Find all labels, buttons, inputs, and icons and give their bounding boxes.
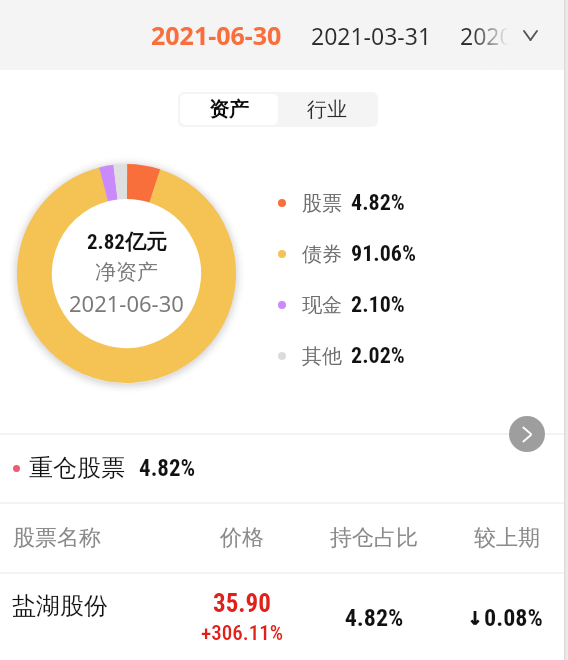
button[interactable]: 资产 [180, 94, 278, 125]
button[interactable]: 其他 [278, 339, 405, 373]
staticText: 资产 [209, 97, 249, 122]
staticText: +306.11% [201, 621, 284, 646]
button[interactable]: 现金 [278, 288, 405, 322]
staticText: 2021-06-30 [151, 18, 282, 52]
staticText: 持仓占比 [330, 524, 418, 552]
staticText: 2021-03-31 [311, 20, 432, 51]
staticText: 债券 [302, 242, 342, 267]
staticText: 2021-06-30 [69, 288, 184, 318]
staticText: 2.10% [351, 292, 405, 318]
staticText: 净资产 [95, 259, 158, 285]
staticText: 较上期 [474, 524, 540, 552]
staticText: 行业 [307, 97, 347, 122]
button[interactable]: 盐湖股份 [0, 573, 568, 660]
button[interactable]: 行业 [278, 94, 376, 125]
staticText: 4.82% [314, 604, 434, 632]
staticText: 其他 [302, 344, 342, 369]
staticText: 0.08% [484, 604, 543, 632]
staticText: 盐湖股份 [12, 591, 108, 621]
button[interactable]: 2021-03-31 [311, 20, 432, 51]
staticText: 2020 [460, 20, 513, 51]
button[interactable]: 2021-06-30 [151, 18, 282, 52]
button[interactable]: Expand date list [513, 18, 547, 52]
staticText: 4.82% [139, 455, 196, 482]
staticText: 2.02% [351, 343, 405, 369]
button[interactable]: 2020 [460, 20, 513, 51]
staticText: 4.82% [351, 190, 405, 216]
button[interactable]: 股票 [278, 186, 405, 220]
button[interactable]: Next page [509, 416, 545, 452]
staticText: 股票名称 [13, 524, 101, 552]
staticText: 重仓股票 [29, 453, 125, 483]
button[interactable]: 重仓股票 [13, 434, 568, 502]
staticText: 35.90 [213, 589, 271, 618]
staticText: 2.82亿元 [87, 229, 167, 255]
staticText: 91.06% [351, 241, 416, 267]
button[interactable]: 债券 [278, 237, 416, 271]
staticText: 现金 [302, 293, 342, 318]
staticText: 股票 [302, 191, 342, 216]
staticText: 价格 [220, 524, 264, 552]
